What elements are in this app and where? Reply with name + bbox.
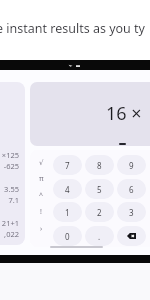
button[interactable]: 5 xyxy=(85,179,114,199)
button[interactable]: 0 xyxy=(53,226,82,246)
staticText: 7 xyxy=(65,160,70,171)
button[interactable]: 9 xyxy=(117,155,146,175)
staticText: ! xyxy=(40,207,42,217)
button[interactable]: 2 xyxy=(85,202,114,222)
staticText: › xyxy=(40,224,43,234)
button[interactable]: π xyxy=(34,172,48,186)
staticText: π xyxy=(39,174,44,184)
button[interactable]: › xyxy=(34,222,48,236)
button[interactable]: ×125 xyxy=(0,82,25,245)
staticText: ,022 xyxy=(0,229,19,239)
button[interactable]: 4 xyxy=(53,179,82,199)
staticText: 7.1 xyxy=(0,195,19,205)
staticText: . xyxy=(98,231,101,242)
staticText: 8 xyxy=(97,160,102,171)
staticText: √ xyxy=(39,159,44,167)
button[interactable]: Delete xyxy=(117,226,146,246)
staticText: -625 xyxy=(0,161,19,171)
staticText: 3.55 xyxy=(0,184,19,194)
button[interactable]: ^ xyxy=(34,189,48,203)
staticText: 16 × xyxy=(106,101,142,126)
button[interactable]: √ xyxy=(34,156,48,170)
button[interactable]: ! xyxy=(34,205,48,219)
staticText: 4 xyxy=(65,184,70,195)
staticText: 1 xyxy=(65,207,70,218)
staticText: 9 xyxy=(129,160,134,171)
staticText: 3 xyxy=(129,207,134,218)
button[interactable]: 7 xyxy=(53,155,82,175)
staticText: 2 xyxy=(97,207,102,218)
button[interactable]: . xyxy=(85,226,114,246)
button[interactable]: 16 × xyxy=(30,82,150,146)
staticText: 21+1 xyxy=(0,218,19,228)
staticText: ^ xyxy=(39,191,44,201)
button[interactable]: 6 xyxy=(117,179,146,199)
staticText: 5 xyxy=(97,184,102,195)
staticText: ×125 xyxy=(0,150,19,160)
button[interactable]: 1 xyxy=(53,202,82,222)
staticText: 0 xyxy=(65,231,70,242)
staticText: e instant results as you ty xyxy=(0,20,145,37)
button[interactable]: 3 xyxy=(117,202,146,222)
staticText: 6 xyxy=(129,184,134,195)
button[interactable]: 8 xyxy=(85,155,114,175)
